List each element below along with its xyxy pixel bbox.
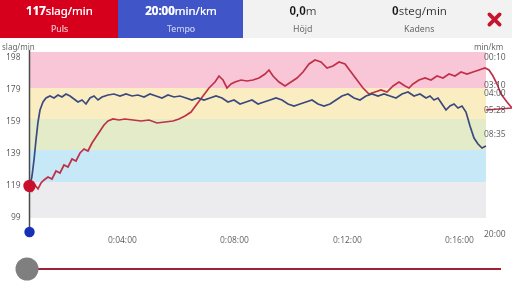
staticText: Puls [51,23,69,35]
staticText: 03:10 [484,79,506,91]
staticText: 0,0m [289,3,317,19]
staticText: Tempo [167,23,196,35]
staticText: 179 [6,83,21,95]
staticText: 05:28 [484,104,506,116]
button[interactable]: Stäng [476,0,512,38]
button[interactable]: 20:00min/km [118,0,243,38]
staticText: 20:00 [484,228,506,240]
button[interactable]: 0,0m [243,0,363,38]
staticText: 0:16:00 [445,234,474,246]
button[interactable]: 117slag/min [0,0,118,38]
staticText: min/km [474,41,504,52]
staticText: 0steg/min [392,3,447,19]
staticText: 00:10 [484,51,506,63]
staticText: 198 [6,51,21,63]
staticText: 159 [6,115,21,127]
staticText: 0:04:00 [108,234,137,246]
button[interactable]: 0steg/min [363,0,476,38]
staticText: 04:00 [484,87,506,99]
staticText: 117slag/min [26,3,93,19]
staticText: Kadens [404,23,435,35]
staticText: 20:00min/km [145,3,217,19]
staticText: 0:12:00 [333,234,362,246]
staticText: Höjd [293,23,313,35]
staticText: 139 [6,147,21,159]
staticText: 0:08:00 [220,234,249,246]
staticText: 08:35 [484,128,506,140]
staticText: 99 [11,211,21,223]
staticText: 119 [6,179,21,191]
staticText: slag/min [2,41,35,52]
